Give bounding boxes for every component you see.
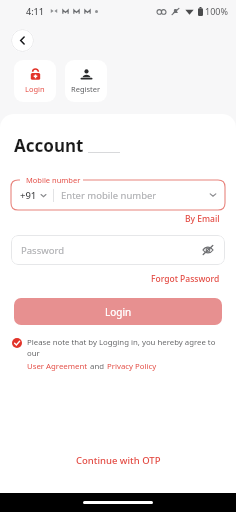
staticText: +91 [20, 189, 37, 202]
button[interactable]: Back [11, 29, 34, 52]
staticText: 100% [205, 5, 228, 17]
staticText: 4:11 [26, 5, 44, 17]
button[interactable]: Show password [201, 243, 215, 257]
staticText: User Agreement [27, 361, 88, 372]
button[interactable]: Password [11, 235, 225, 265]
button[interactable]: Login [14, 298, 222, 325]
staticText: Register [71, 84, 101, 94]
button[interactable]: Privacy Policy [107, 361, 157, 372]
button[interactable]: By Email [183, 211, 222, 227]
staticText: Privacy Policy [107, 361, 157, 372]
button[interactable]: +91 [11, 180, 225, 210]
staticText: Password [21, 244, 64, 257]
staticText: Continue with OTP [76, 454, 161, 467]
button[interactable]: Continue with OTP [72, 450, 165, 471]
staticText: Login [105, 305, 132, 319]
staticText: and [88, 361, 107, 372]
button[interactable]: Register [65, 60, 107, 102]
button[interactable]: Login [14, 60, 56, 102]
staticText: Please note that by Logging in, you here… [27, 337, 222, 359]
button[interactable]: User Agreement [27, 361, 88, 372]
button[interactable]: Forgot Password [149, 271, 222, 287]
staticText: Account [14, 134, 84, 157]
staticText: Forgot Password [151, 273, 220, 285]
staticText: Mobile number [26, 175, 81, 185]
staticText: Enter mobile number [61, 189, 157, 202]
staticText: Login [25, 84, 45, 94]
staticText: By Email [185, 213, 220, 225]
